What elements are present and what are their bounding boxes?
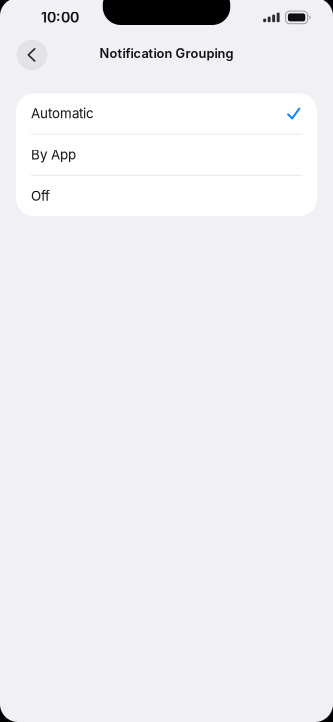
staticText: Off [31,188,50,204]
button[interactable]: Off [16,176,317,216]
button[interactable]: By App [16,135,317,175]
button[interactable]: Automatic [16,93,317,134]
staticText: Automatic [31,105,94,121]
staticText: Notification Grouping [99,46,233,61]
staticText: 10:00 [41,9,79,26]
button[interactable]: Back [16,36,48,71]
staticText: By App [31,147,76,163]
